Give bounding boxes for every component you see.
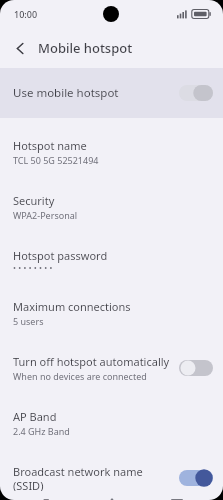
button[interactable]: Turn off hotspot automatically (0, 345, 223, 391)
button[interactable]: Hotspot name (0, 129, 223, 175)
staticText: 5 users (13, 315, 44, 327)
staticText: TCL 50 5G 52521494 (13, 154, 99, 166)
staticText: Security (13, 193, 55, 208)
staticText: When no devices are connected (13, 370, 147, 382)
staticText: Turn off hotspot automatically (13, 354, 170, 369)
staticText: WPA2-Personal (13, 209, 78, 221)
staticText: Use mobile hotspot (13, 85, 179, 101)
button[interactable]: Back (5, 33, 35, 63)
button[interactable] (179, 358, 213, 378)
button[interactable]: Security (0, 184, 223, 230)
button[interactable] (179, 468, 213, 488)
staticText: 2.4 GHz Band (13, 425, 70, 437)
button[interactable]: AP Band (0, 400, 223, 446)
staticText: 10:00 (14, 8, 38, 20)
staticText: AP Band (13, 409, 57, 424)
staticText: Hotspot password (13, 248, 108, 263)
button[interactable]: Use mobile hotspot (0, 68, 223, 118)
staticText: Maximum connections (13, 299, 131, 314)
staticText: Hotspot name (13, 138, 87, 153)
staticText: Mobile hotspot (38, 39, 133, 57)
button[interactable]: Broadcast network name (SSID) (0, 455, 223, 500)
button[interactable] (179, 83, 213, 103)
staticText: Broadcast network name (SSID) (13, 464, 171, 491)
button[interactable]: Maximum connections (0, 290, 223, 336)
button[interactable]: Hotspot password (0, 239, 223, 281)
